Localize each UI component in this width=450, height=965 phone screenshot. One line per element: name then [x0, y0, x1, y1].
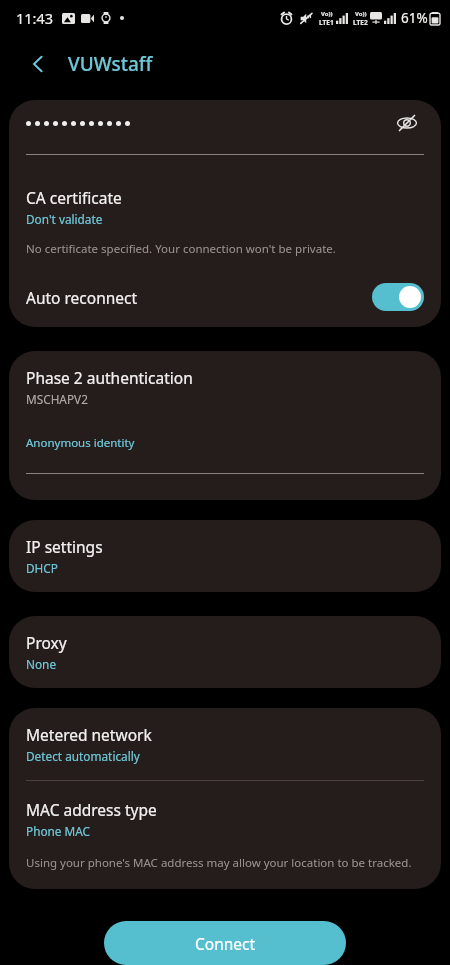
- button[interactable]: Connect: [104, 921, 346, 965]
- staticText: 11:43: [16, 8, 54, 28]
- staticText: MSCHAPV2: [26, 391, 88, 407]
- button[interactable]: Back: [18, 44, 58, 84]
- staticText: Anonymous identity: [26, 435, 135, 451]
- staticText: Detect automatically: [26, 748, 140, 764]
- staticText: Don't validate: [26, 211, 103, 227]
- staticText: No certificate specified. Your connectio…: [26, 241, 336, 257]
- staticText: Phone MAC: [26, 823, 91, 839]
- staticText: Proxy: [26, 632, 67, 653]
- staticText: IP settings: [26, 536, 103, 557]
- staticText: Vo)): [321, 10, 333, 18]
- button[interactable]: Auto reconnect: [26, 283, 424, 311]
- button[interactable]: Show password: [26, 106, 424, 155]
- staticText: Using your phone's MAC address may allow…: [26, 855, 412, 871]
- staticText: Vo)): [355, 10, 367, 18]
- staticText: Phase 2 authentication: [26, 367, 193, 388]
- staticText: Metered network: [26, 724, 152, 745]
- staticText: DHCP: [26, 560, 58, 576]
- button[interactable]: IP settings: [26, 536, 424, 576]
- staticText: Auto reconnect: [26, 287, 138, 308]
- staticText: CA certificate: [26, 187, 122, 208]
- staticText: Connect: [195, 933, 256, 954]
- button[interactable]: Show password: [390, 106, 424, 140]
- button[interactable]: Proxy: [26, 632, 424, 672]
- button[interactable]: Phase 2 authentication: [26, 367, 424, 407]
- button[interactable]: MAC address type: [26, 799, 424, 839]
- button[interactable]: Metered network: [26, 724, 424, 764]
- staticText: LTE2: [353, 18, 368, 27]
- button[interactable]: CA certificate: [26, 187, 424, 227]
- staticText: 61%: [401, 9, 428, 27]
- staticText: None: [26, 656, 57, 672]
- staticText: VUWstaff: [68, 51, 153, 77]
- staticText: MAC address type: [26, 799, 157, 820]
- staticText: LTE1: [319, 18, 334, 27]
